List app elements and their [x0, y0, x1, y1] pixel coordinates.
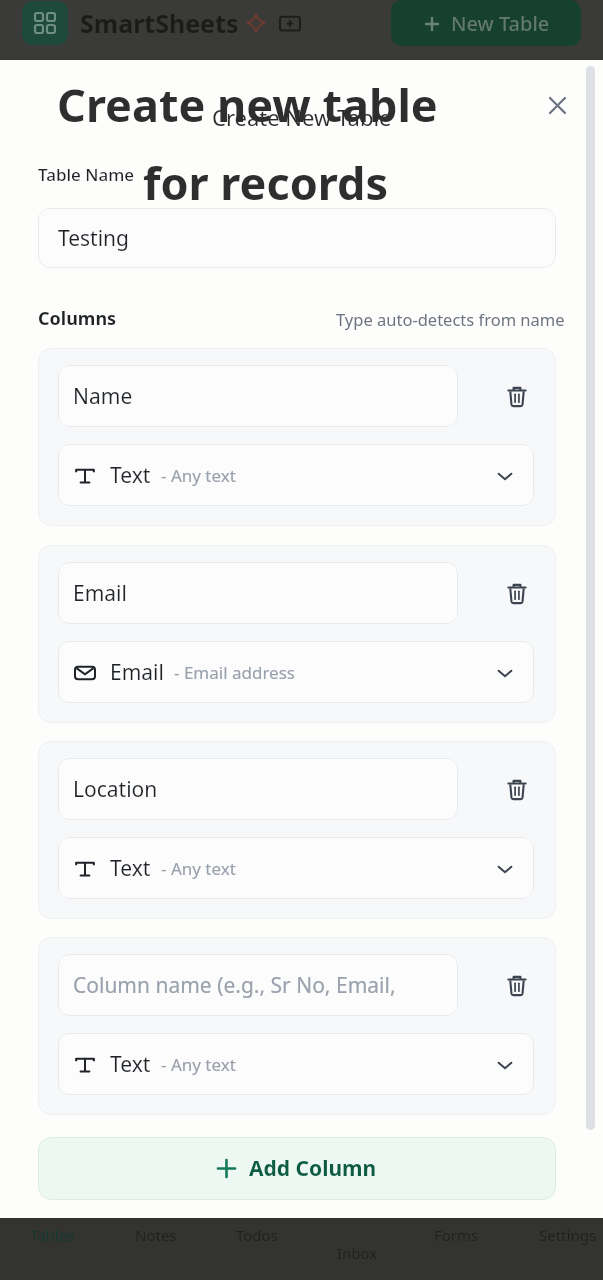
- staticText: Text: [110, 854, 151, 883]
- button[interactable]: Add Column: [38, 1137, 556, 1200]
- staticText: Testing: [58, 224, 130, 253]
- staticText: Text: [110, 461, 151, 490]
- button[interactable]: Delete column: [494, 962, 540, 1008]
- button[interactable]: Todos: [212, 1220, 302, 1250]
- button[interactable]: New folder: [279, 12, 301, 34]
- button[interactable]: App menu: [22, 1, 68, 45]
- button[interactable]: Text: [58, 1033, 534, 1095]
- staticText: Columns: [38, 306, 117, 331]
- button[interactable]: Delete column: [494, 570, 540, 616]
- staticText: Column name (e.g., Sr No, Email,: [73, 971, 396, 1000]
- staticText: Notes: [135, 1225, 177, 1245]
- staticText: New Table: [451, 10, 550, 37]
- button[interactable]: Forms: [411, 1220, 501, 1250]
- staticText: - Any text: [161, 857, 236, 880]
- other: Expand: [494, 465, 516, 487]
- button[interactable]: Email: [58, 562, 458, 624]
- staticText: SmartSheets: [80, 6, 239, 40]
- staticText: Type auto-detects from name: [336, 308, 565, 330]
- staticText: Create new table: [57, 74, 438, 135]
- staticText: Name: [73, 382, 133, 411]
- button[interactable]: Notes: [111, 1220, 201, 1250]
- other: Expand: [494, 662, 516, 684]
- button[interactable]: Delete column: [494, 766, 540, 812]
- staticText: Tables: [30, 1225, 75, 1245]
- staticText: - Any text: [161, 1053, 236, 1076]
- staticText: Email: [110, 658, 164, 687]
- staticText: Settings: [539, 1225, 597, 1245]
- button[interactable]: Delete column: [494, 373, 540, 419]
- staticText: Email: [73, 579, 127, 608]
- staticText: Text: [110, 1050, 151, 1079]
- staticText: Forms: [434, 1225, 479, 1245]
- button[interactable]: New Table: [391, 0, 581, 46]
- button[interactable]: Settings: [523, 1220, 603, 1250]
- button[interactable]: Text: [58, 444, 534, 506]
- button[interactable]: Column name (e.g., Sr No, Email,: [58, 954, 458, 1016]
- button[interactable]: Location: [58, 758, 458, 820]
- staticText: Table Name: [38, 163, 134, 186]
- other: Expand: [494, 858, 516, 880]
- staticText: Inbox: [337, 1243, 378, 1263]
- button[interactable]: Close: [540, 88, 574, 122]
- button[interactable]: AI: [247, 14, 265, 32]
- button[interactable]: Tables: [7, 1220, 97, 1250]
- button[interactable]: Text: [58, 837, 534, 899]
- staticText: Todos: [236, 1225, 278, 1245]
- button[interactable]: Name: [58, 365, 458, 427]
- staticText: for records: [143, 152, 389, 213]
- staticText: - Any text: [161, 464, 236, 487]
- staticText: Location: [73, 775, 158, 804]
- staticText: Create New Table: [212, 102, 392, 132]
- other: Expand: [494, 1054, 516, 1076]
- button[interactable]: Testing: [38, 208, 556, 268]
- staticText: - Email address: [174, 661, 295, 684]
- staticText: Add Column: [249, 1154, 377, 1183]
- button[interactable]: Email: [58, 641, 534, 703]
- button[interactable]: Inbox: [312, 1239, 402, 1267]
